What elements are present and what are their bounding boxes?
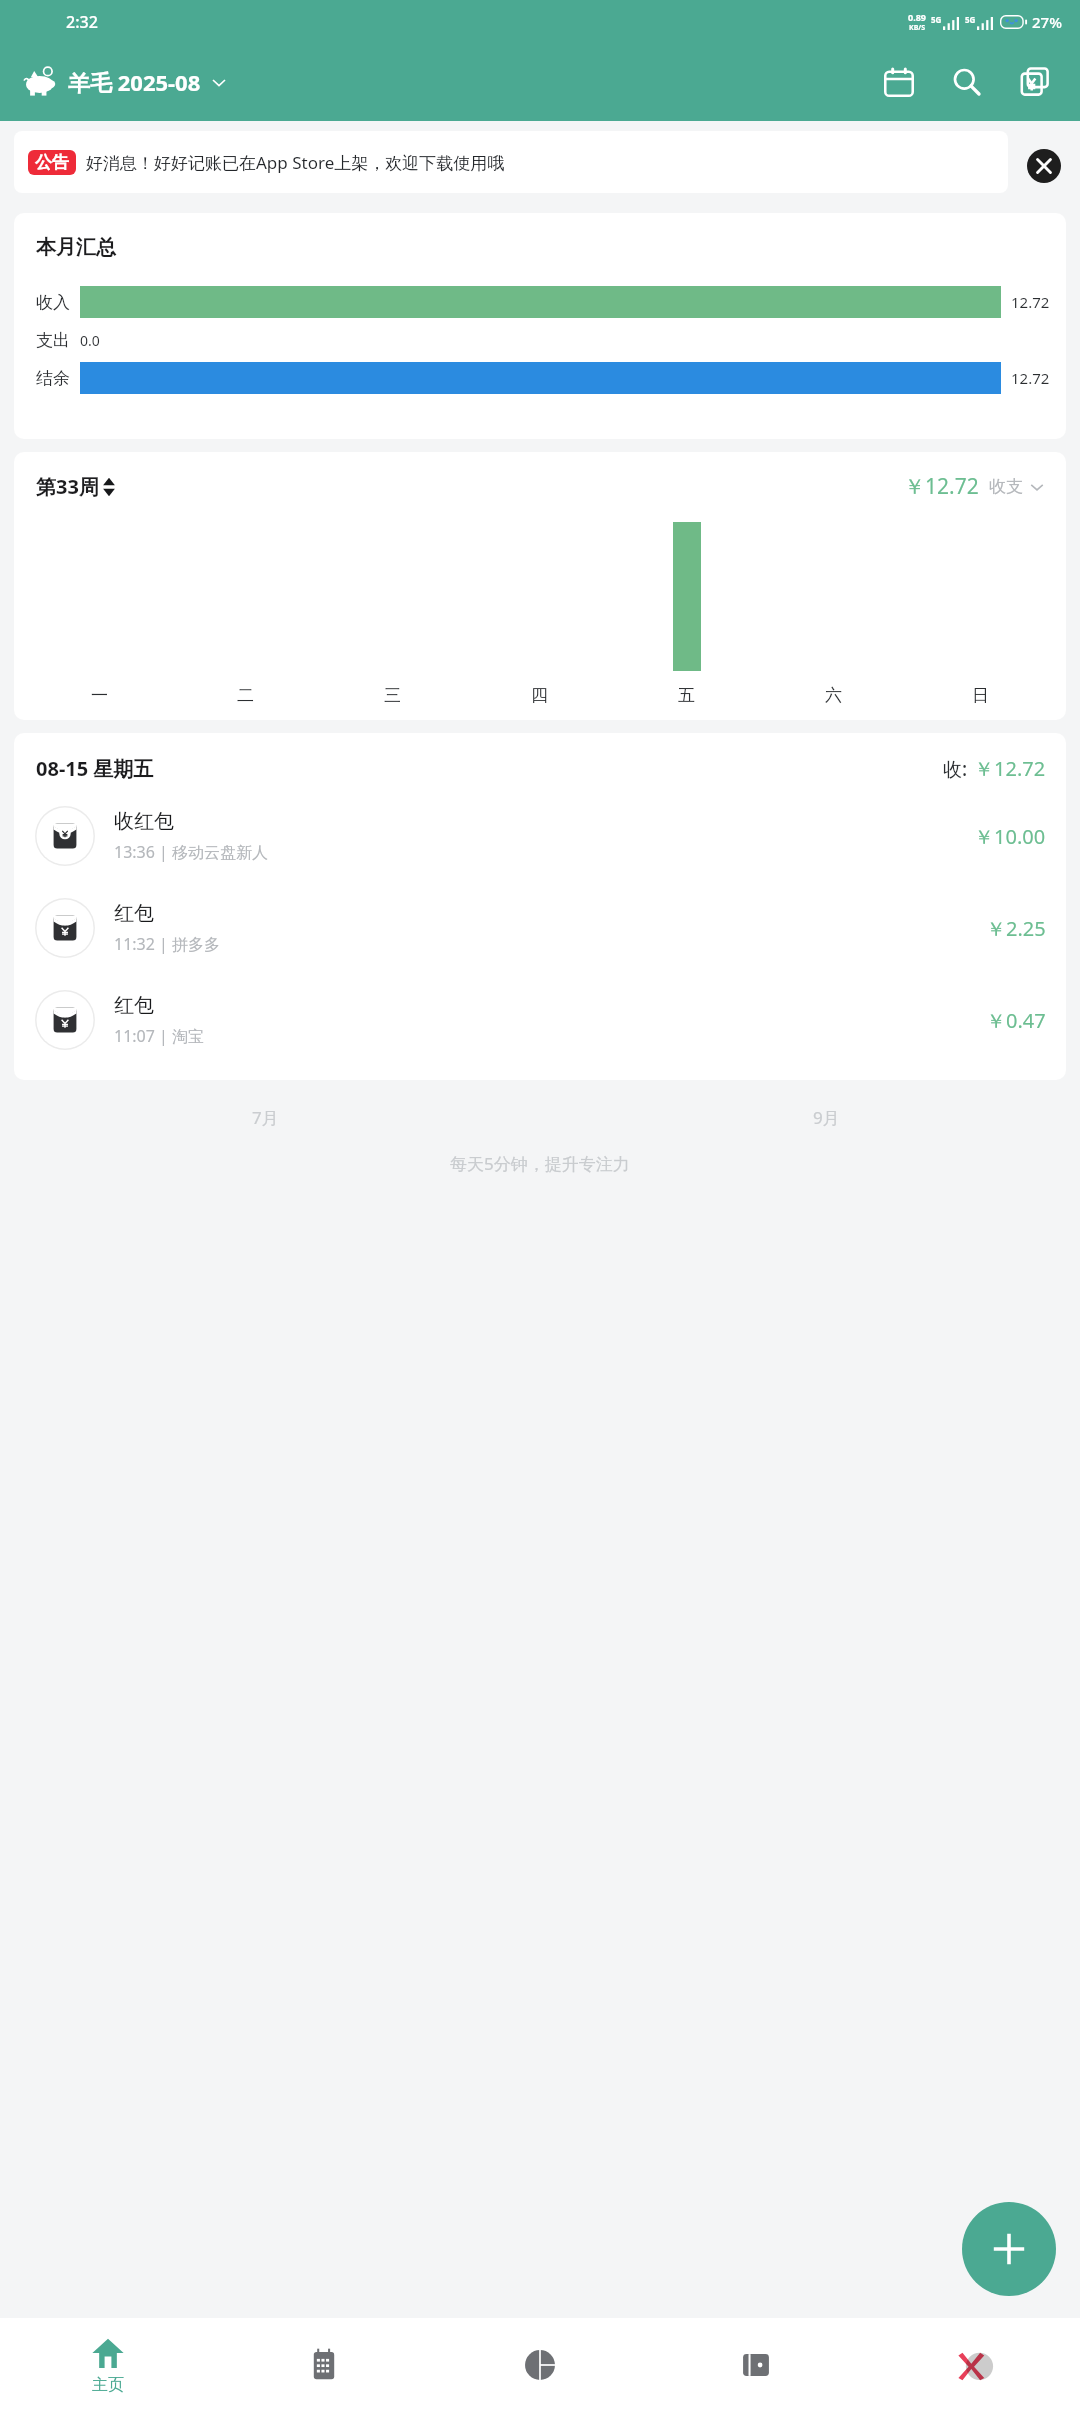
- staticText: 好消息！好好记账已在App Store上架，欢迎下载使用哦: [86, 151, 505, 174]
- staticText: 7月: [252, 1106, 279, 1129]
- staticText: 0.89: [908, 11, 926, 23]
- staticText: 12.72: [1011, 292, 1050, 312]
- button[interactable]: 08-15 星期五: [14, 733, 1066, 1080]
- button[interactable]: 公告: [14, 131, 1008, 193]
- staticText: 收红包: [114, 809, 174, 834]
- staticText: 六: [825, 685, 842, 706]
- staticText: 11:07 | 淘宝: [114, 1025, 205, 1047]
- button[interactable]: Tab: [216, 2318, 432, 2412]
- staticText: 每天5分钟，提升专注力: [450, 1152, 630, 1175]
- staticText: 红包: [114, 993, 154, 1018]
- staticText: 二: [237, 685, 254, 706]
- button[interactable]: 主页: [0, 2318, 216, 2412]
- staticText: ￥12.72: [904, 472, 979, 501]
- button[interactable]: Accounts: [1012, 59, 1058, 105]
- staticText: 结余: [36, 368, 70, 389]
- staticText: 四: [531, 685, 548, 706]
- button[interactable]: 羊毛 2025-08: [20, 61, 233, 103]
- button[interactable]: Search: [944, 59, 990, 105]
- button[interactable]: Calendar: [876, 59, 922, 105]
- staticText: 27%: [1032, 12, 1062, 32]
- staticText: 红包: [114, 901, 154, 926]
- staticText: 11:32 | 拼多多: [114, 933, 221, 955]
- staticText: 公告: [35, 152, 69, 173]
- staticText: 五: [678, 685, 695, 706]
- button[interactable]: Add record: [962, 2202, 1056, 2296]
- staticText: ￥10.00: [974, 823, 1046, 850]
- staticText: ￥0.47: [986, 1007, 1046, 1034]
- staticText: 0.0: [80, 331, 100, 350]
- staticText: 支出: [36, 330, 70, 351]
- staticText: 5G: [931, 14, 942, 25]
- staticText: 收:: [943, 756, 968, 782]
- button[interactable]: Tab: [864, 2318, 1080, 2412]
- staticText: 三: [384, 685, 401, 706]
- staticText: 13:36 | 移动云盘新人: [114, 841, 269, 863]
- staticText: 2:32: [66, 11, 98, 33]
- staticText: 9月: [813, 1106, 840, 1129]
- staticText: 主页: [92, 2375, 124, 2395]
- staticText: 收支: [989, 476, 1023, 497]
- staticText: 本月汇总: [36, 235, 116, 260]
- staticText: 12.72: [1011, 368, 1050, 388]
- staticText: ￥12.72: [974, 755, 1046, 782]
- button[interactable]: Close announcement: [1022, 144, 1066, 188]
- staticText: 收入: [36, 292, 70, 313]
- button[interactable]: Tab: [432, 2318, 648, 2412]
- button[interactable]: 红包: [14, 974, 1066, 1066]
- button[interactable]: 本月汇总: [14, 213, 1066, 439]
- staticText: 08-15 星期五: [36, 755, 154, 782]
- staticText: 5G: [965, 14, 976, 25]
- staticText: 一: [91, 685, 108, 706]
- staticText: KB/S: [909, 23, 926, 33]
- button[interactable]: Tab: [648, 2318, 864, 2412]
- staticText: 羊毛 2025-08: [68, 67, 201, 97]
- button[interactable]: 红包: [14, 882, 1066, 974]
- button[interactable]: 收红包: [14, 790, 1066, 882]
- staticText: ￥2.25: [986, 915, 1046, 942]
- button[interactable]: 第33周: [14, 452, 1066, 720]
- staticText: 日: [972, 685, 989, 706]
- staticText: 第33周: [36, 473, 99, 500]
